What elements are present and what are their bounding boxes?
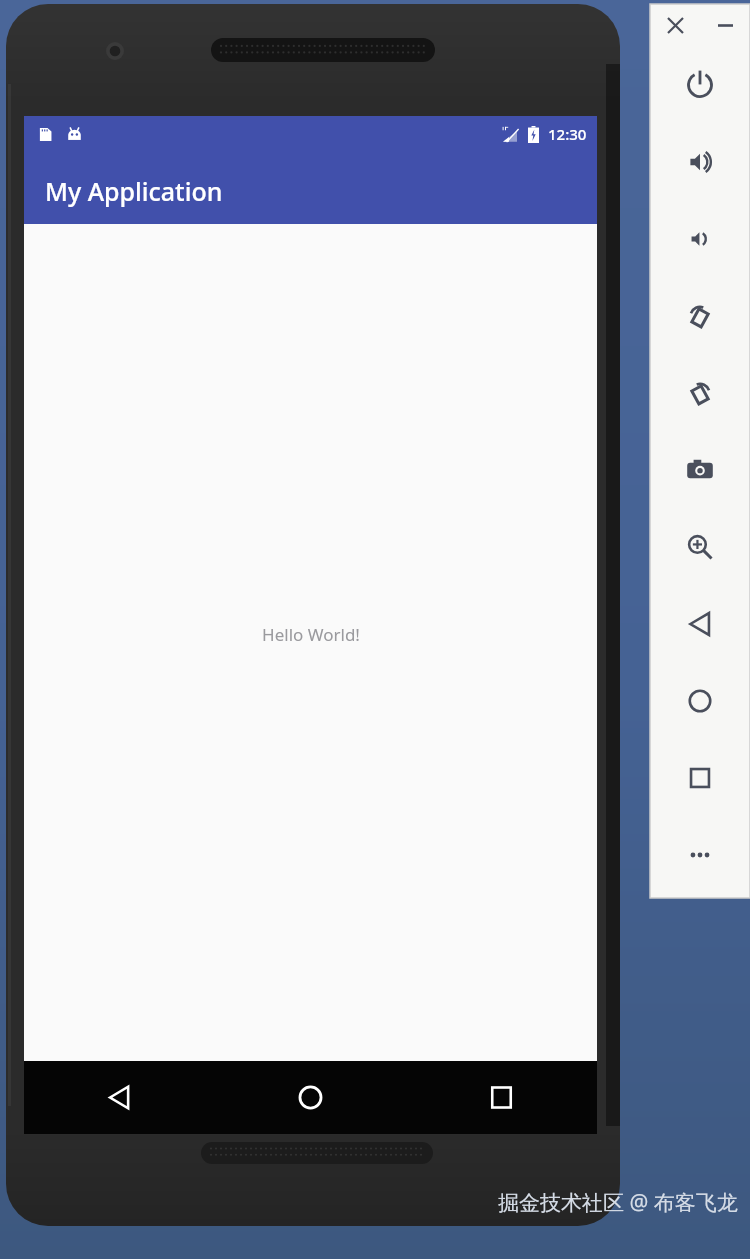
button[interactable]: More <box>650 816 750 893</box>
button[interactable]: Back <box>650 585 750 662</box>
button[interactable]: Home <box>215 1061 406 1134</box>
button[interactable]: Volume down <box>650 200 750 277</box>
button[interactable]: Rotate right <box>650 354 750 431</box>
button[interactable]: Zoom <box>650 508 750 585</box>
staticText: 掘金技术社区 @ 布客飞龙 <box>498 1188 738 1217</box>
button[interactable]: Power <box>650 46 750 123</box>
button[interactable]: Rotate left <box>650 277 750 354</box>
button[interactable]: Overview <box>650 739 750 816</box>
staticText: 12:30 <box>548 124 587 144</box>
button[interactable]: Minimize emulator <box>700 4 750 46</box>
button[interactable]: Volume up <box>650 123 750 200</box>
button[interactable]: Recent apps <box>406 1061 597 1134</box>
staticText: My Application <box>45 174 223 208</box>
button[interactable]: Close emulator <box>650 4 700 46</box>
button[interactable]: Take screenshot <box>650 431 750 508</box>
staticText: Hello World! <box>262 623 360 646</box>
button[interactable]: Home <box>650 662 750 739</box>
button[interactable]: Back <box>24 1061 215 1134</box>
